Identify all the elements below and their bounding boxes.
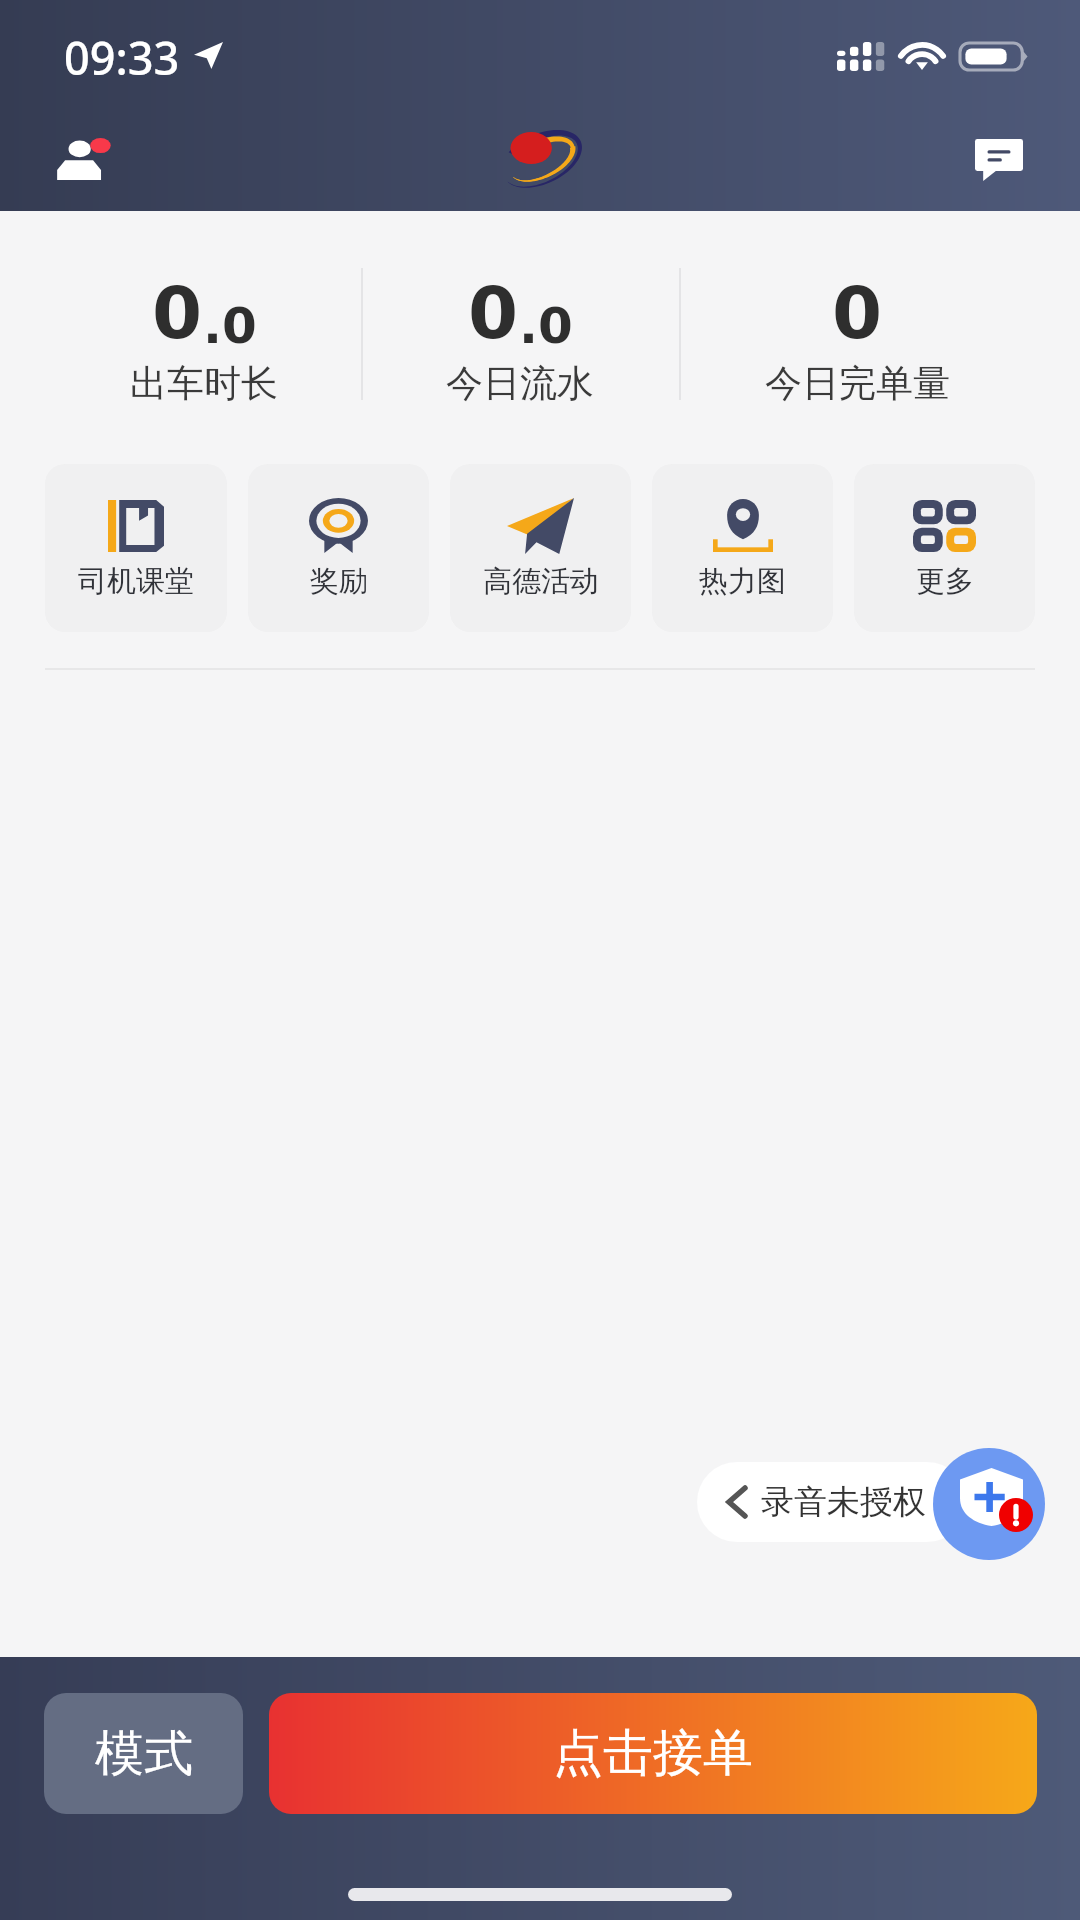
staticText: 点击接单: [553, 1722, 753, 1785]
staticText: 09:33: [64, 27, 180, 88]
button[interactable]: 高德活动: [450, 464, 631, 632]
staticText: 模式: [95, 1723, 193, 1785]
staticText: 司机课堂: [78, 563, 194, 600]
button[interactable]: Messages: [959, 128, 1039, 190]
button[interactable]: 热力图: [652, 464, 833, 632]
button[interactable]: 点击接单: [269, 1693, 1037, 1814]
staticText: 0: [468, 271, 519, 355]
staticText: 0: [152, 271, 203, 355]
button[interactable]: Profile: [36, 128, 132, 194]
button[interactable]: 司机课堂: [45, 464, 227, 632]
button[interactable]: 0: [692, 211, 1022, 464]
staticText: 热力图: [699, 563, 786, 600]
staticText: 今日流水: [446, 360, 594, 407]
staticText: .0: [519, 297, 573, 355]
button[interactable]: 模式: [44, 1693, 243, 1814]
staticText: 出车时长: [130, 360, 278, 407]
staticText: .0: [203, 297, 257, 355]
staticText: 更多: [916, 563, 974, 600]
button[interactable]: Recording permission: [933, 1448, 1045, 1560]
button[interactable]: 录音未授权: [697, 1462, 967, 1542]
staticText: 0: [832, 271, 883, 355]
staticText: 奖励: [310, 563, 368, 600]
staticText: 今日完单量: [765, 360, 950, 407]
button[interactable]: 0: [370, 211, 670, 464]
button[interactable]: 0: [44, 211, 364, 464]
button[interactable]: 更多: [854, 464, 1035, 632]
staticText: 高德活动: [483, 563, 599, 600]
button[interactable]: 奖励: [248, 464, 429, 632]
staticText: 录音未授权: [761, 1481, 926, 1523]
